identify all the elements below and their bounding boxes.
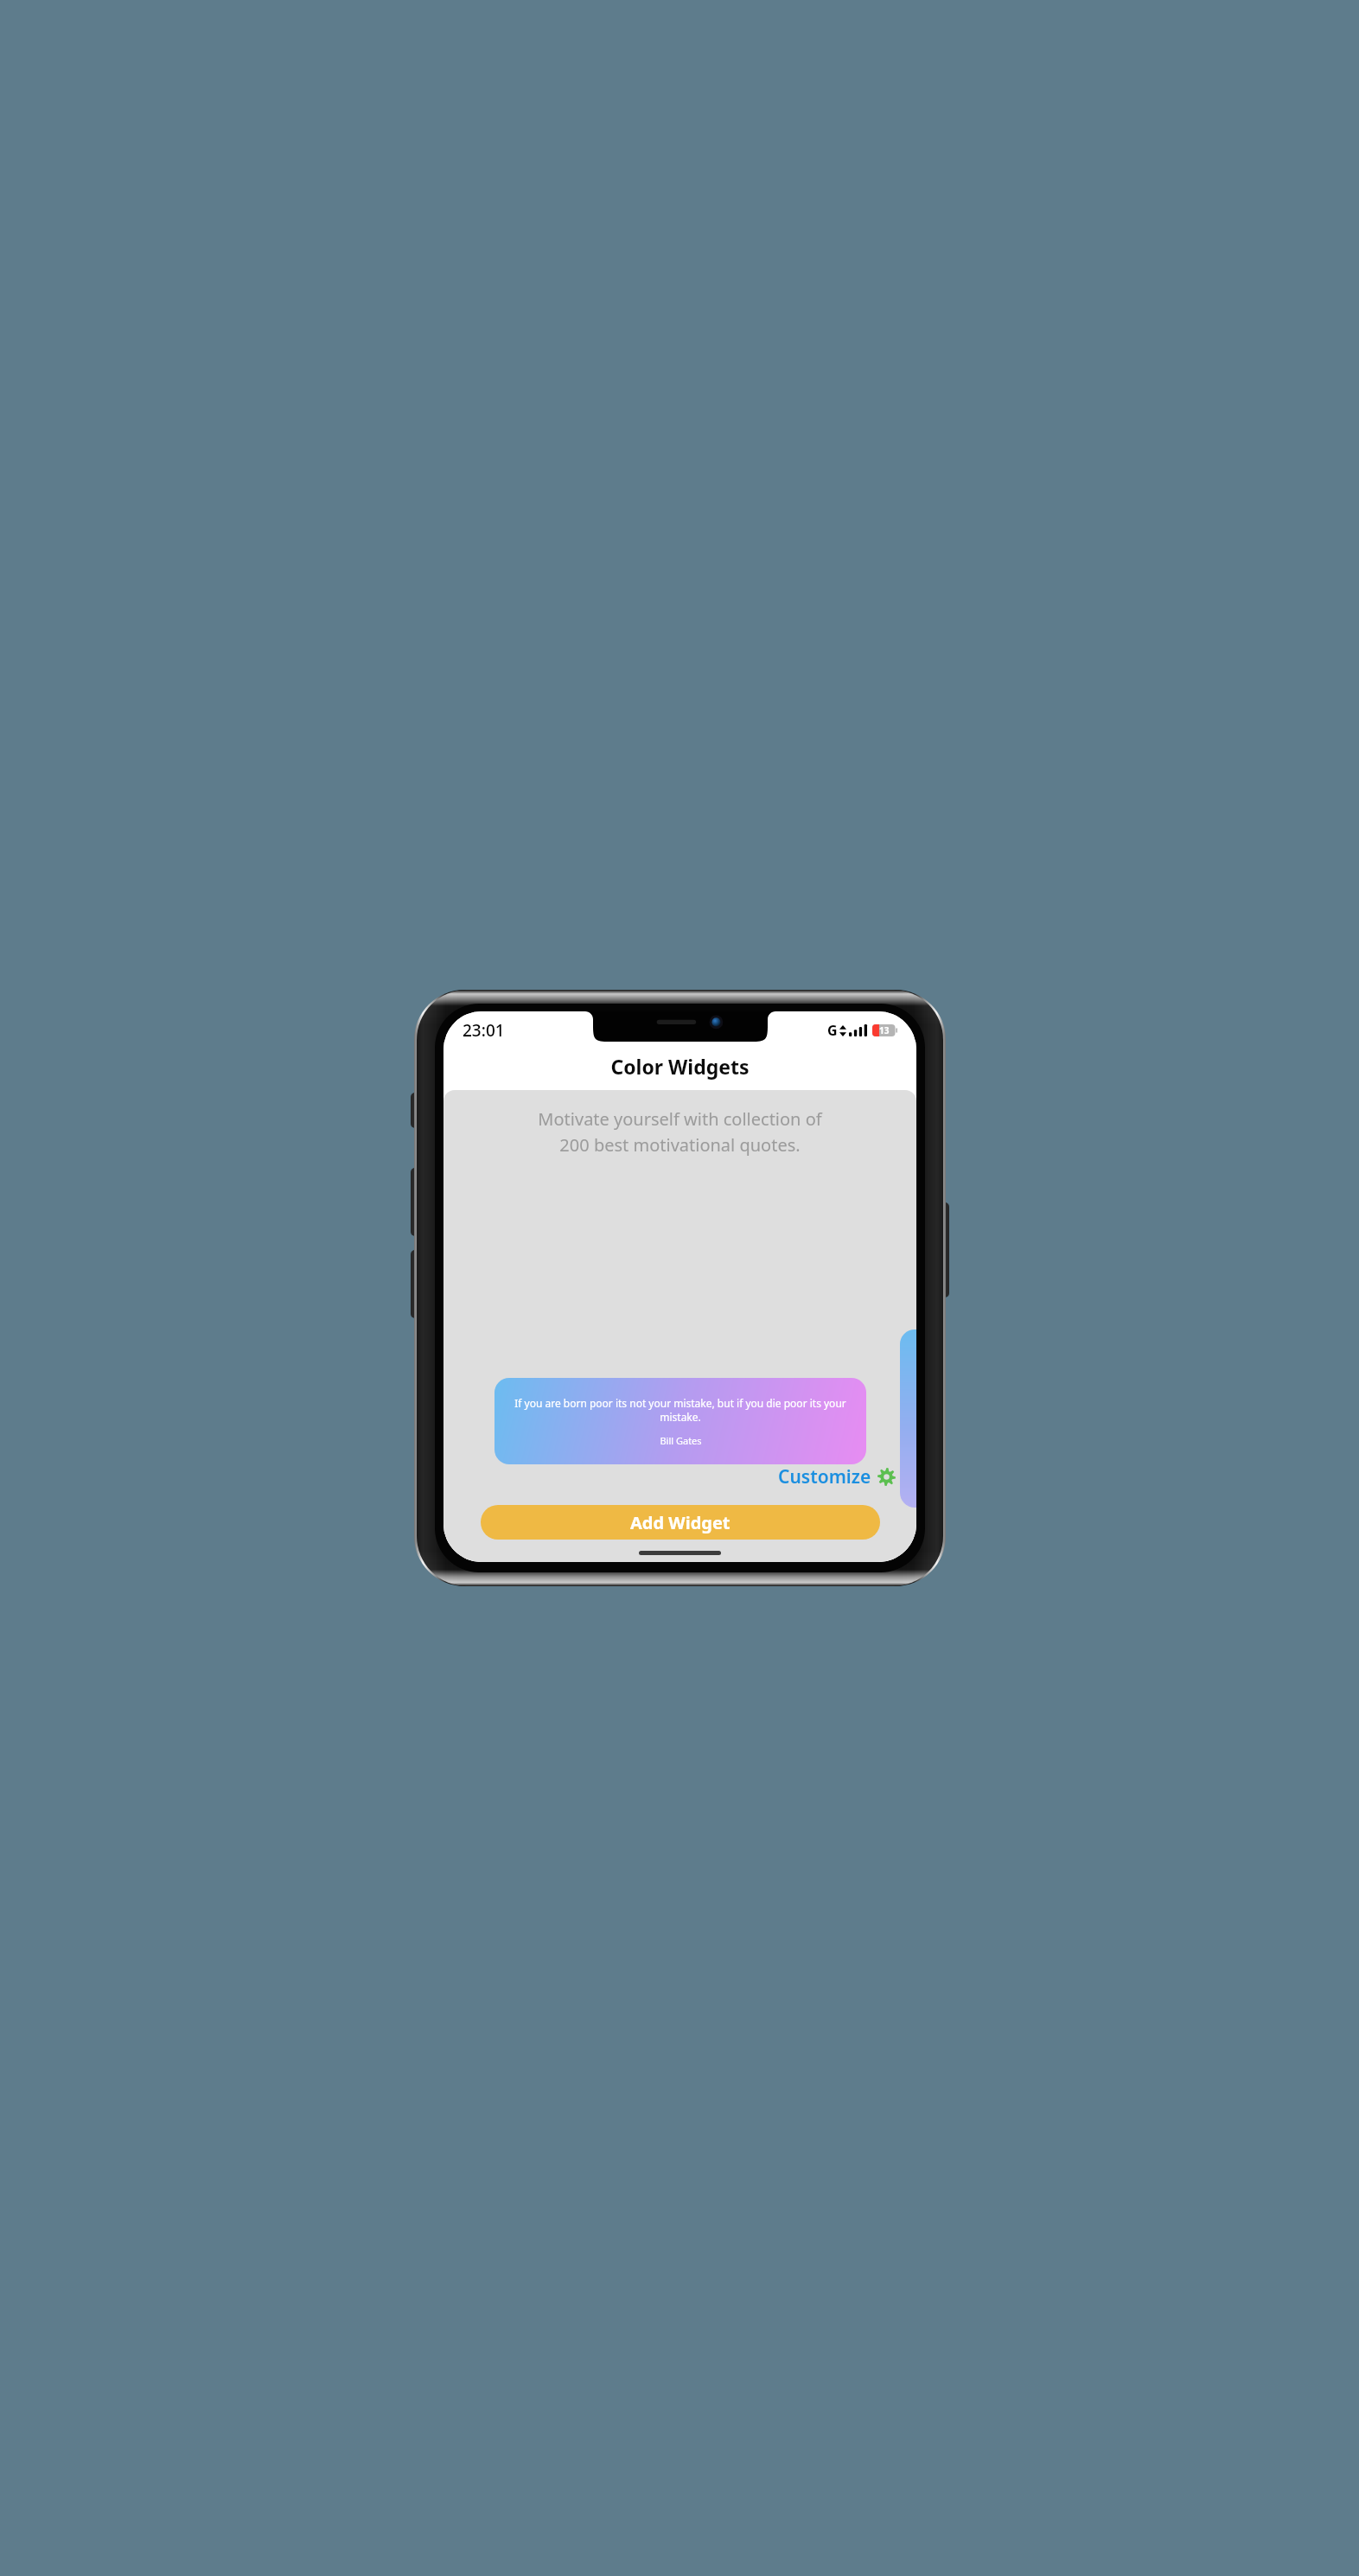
staticText: Add Widget	[630, 1511, 731, 1534]
staticText: Color Widgets	[443, 1053, 916, 1080]
staticText: Customize	[778, 1464, 871, 1489]
staticText: Motivate yourself with collection of 200…	[472, 1107, 888, 1157]
staticText: 23:01	[463, 1019, 505, 1042]
staticText: If you are born poor its not your mistak…	[506, 1396, 855, 1424]
staticText: G	[827, 1021, 838, 1040]
button[interactable]: Customize	[775, 1462, 899, 1492]
button[interactable]: Next widget preview	[900, 1329, 916, 1508]
staticText: 13	[879, 1024, 890, 1036]
button[interactable]: If you are born poor its not your mistak…	[494, 1378, 866, 1464]
button[interactable]: Add Widget	[481, 1505, 880, 1540]
staticText: Bill Gates	[660, 1434, 702, 1447]
